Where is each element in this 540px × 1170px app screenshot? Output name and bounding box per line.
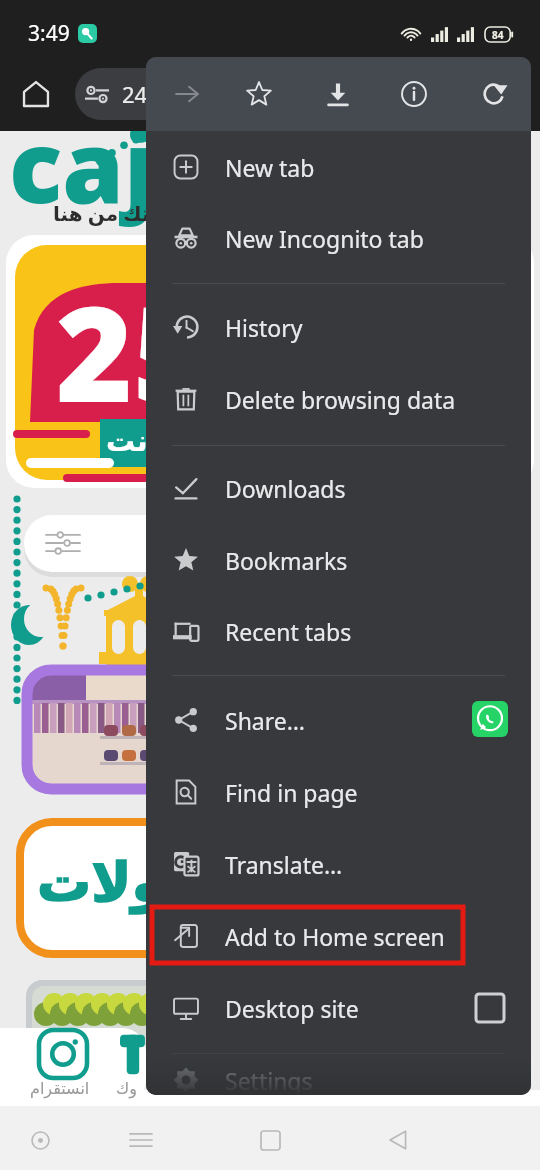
- button[interactable]: Desktop site checkbox: [476, 994, 504, 1022]
- staticText: 3:49: [28, 19, 70, 48]
- staticText: New tab: [225, 152, 315, 183]
- button[interactable]: Bookmarks: [146, 532, 531, 588]
- staticText: Add to Home screen: [225, 921, 445, 952]
- button[interactable]: Desktop site: [146, 980, 531, 1036]
- staticText: 84: [492, 28, 504, 42]
- staticText: 25: [56, 262, 210, 440]
- button[interactable]: Reload: [471, 70, 519, 118]
- staticText: History: [225, 312, 303, 343]
- button[interactable]: Bookmark: [235, 70, 283, 118]
- button[interactable]: Back: [376, 1118, 420, 1162]
- button[interactable]: Add to Home screen: [146, 908, 531, 964]
- button[interactable]: Delete browsing data: [146, 371, 531, 427]
- button[interactable]: Forward: [163, 70, 211, 118]
- staticText: Delete browsing data: [225, 384, 456, 415]
- button[interactable]: New tab: [146, 139, 531, 195]
- button[interactable]: Find in page: [146, 764, 531, 820]
- button[interactable]: Settings: [146, 1052, 531, 1095]
- button[interactable]: Home: [12, 70, 60, 118]
- button[interactable]: 24: [75, 68, 415, 120]
- button[interactable]: Share via WhatsApp: [472, 701, 508, 737]
- button[interactable]: New Incognito tab: [146, 210, 531, 266]
- staticText: ولات: [37, 851, 166, 914]
- button[interactable]: Home: [248, 1118, 292, 1162]
- button[interactable]: Recent tabs: [146, 603, 531, 659]
- button[interactable]: Downloads: [146, 460, 531, 516]
- button[interactable]: Assistant: [18, 1118, 62, 1162]
- staticText: جاتك من هنا: [53, 200, 172, 227]
- staticText: وك: [116, 1079, 137, 1098]
- button[interactable]: Download: [314, 70, 362, 118]
- staticText: caja: [9, 97, 218, 232]
- button[interactable]: History: [146, 299, 531, 355]
- staticText: انستقرام: [30, 1079, 90, 1098]
- staticText: Desktop site: [225, 993, 359, 1024]
- staticText: Find in page: [225, 777, 358, 808]
- button[interactable]: Recents: [119, 1118, 163, 1162]
- staticText: Recent tabs: [225, 616, 352, 647]
- staticText: Downloads: [225, 473, 346, 504]
- staticText: Translate…: [225, 849, 343, 880]
- staticText: 24: [122, 79, 148, 109]
- button[interactable]: Page info: [390, 70, 438, 118]
- staticText: Share…: [225, 705, 305, 736]
- button[interactable]: Share…: [146, 692, 531, 748]
- staticText: New Incognito tab: [225, 223, 424, 254]
- button[interactable]: Translate…: [146, 836, 531, 892]
- staticText: Bookmarks: [225, 545, 348, 576]
- staticText: Settings: [225, 1065, 313, 1095]
- staticText: نت: [106, 424, 148, 458]
- button[interactable]: Instagram: [39, 1030, 87, 1078]
